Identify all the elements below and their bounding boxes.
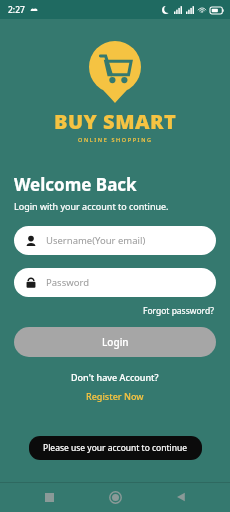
button[interactable]: Username(Your email) (14, 226, 216, 255)
staticText: Forgot password? (143, 305, 214, 317)
staticText: Login (102, 335, 129, 349)
staticText: Welcome Back (14, 173, 137, 196)
staticText: Please use your account to continue (43, 442, 188, 454)
button[interactable]: Forgot password? (141, 304, 216, 318)
staticText: Don't have Account? (71, 371, 159, 383)
button[interactable]: Home (98, 482, 132, 512)
staticText: Password (46, 276, 89, 289)
staticText: Login with your account to continue. (14, 200, 169, 212)
button[interactable]: Recent apps (32, 482, 66, 512)
staticText: 2:27 (8, 4, 25, 16)
button[interactable]: Password (14, 268, 216, 297)
staticText: BUY SMART (54, 108, 177, 135)
staticText: Username(Your email) (46, 234, 146, 247)
button[interactable]: Register Now (83, 389, 147, 403)
button[interactable]: Login (14, 327, 216, 357)
staticText: ONLINE SHOPPING (78, 136, 153, 143)
button[interactable]: Back (164, 482, 198, 512)
staticText: Register Now (86, 390, 144, 402)
